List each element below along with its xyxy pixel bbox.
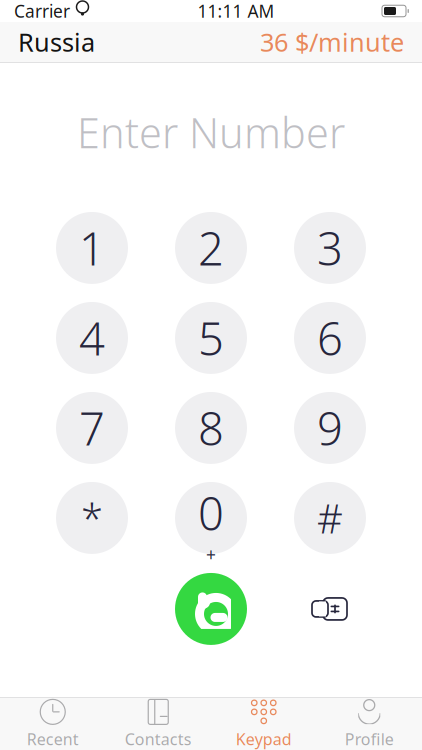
button[interactable]: 6 [294, 302, 366, 374]
staticText: 8 [198, 398, 224, 458]
button[interactable]: Profile [316, 698, 422, 750]
button[interactable]: Call [175, 573, 247, 645]
staticText: * [81, 491, 103, 544]
staticText: + [206, 543, 216, 566]
staticText: # [317, 491, 343, 544]
button[interactable]: Russia [0, 22, 105, 62]
button[interactable]: Delete [293, 573, 365, 645]
staticText: 3 [317, 218, 343, 278]
staticText: Enter Number [77, 105, 345, 160]
button[interactable]: 1 [56, 212, 128, 284]
button[interactable]: * [56, 482, 128, 554]
staticText: 4 [79, 308, 105, 368]
button[interactable]: 8 [175, 392, 247, 464]
button[interactable]: 36 $/minute [250, 22, 422, 62]
staticText: 11:11 AM [197, 0, 274, 22]
button[interactable]: Recent [0, 698, 105, 750]
staticText: 0 [198, 483, 224, 543]
button[interactable]: # [294, 482, 366, 554]
button[interactable]: 7 [56, 392, 128, 464]
button[interactable]: 4 [56, 302, 128, 374]
staticText: Russia [18, 25, 95, 59]
staticText: 2 [198, 218, 224, 278]
staticText: 7 [79, 398, 105, 458]
button[interactable]: 3 [294, 212, 366, 284]
button[interactable]: 9 [294, 392, 366, 464]
staticText: 6 [317, 308, 343, 368]
staticText: 1 [79, 218, 105, 278]
button[interactable]: Keypad [211, 698, 316, 750]
button[interactable]: Contacts [105, 698, 211, 750]
staticText: Keypad [236, 728, 292, 750]
button[interactable]: 0 [175, 482, 247, 554]
staticText: Recent [27, 728, 79, 750]
button[interactable]: 2 [175, 212, 247, 284]
staticText: Profile [345, 728, 394, 750]
staticText: Carrier [14, 0, 70, 22]
staticText: 36 $/minute [260, 25, 404, 59]
staticText: 5 [198, 308, 224, 368]
staticText: Contacts [125, 728, 192, 750]
button[interactable]: 5 [175, 302, 247, 374]
staticText: 9 [317, 398, 343, 458]
